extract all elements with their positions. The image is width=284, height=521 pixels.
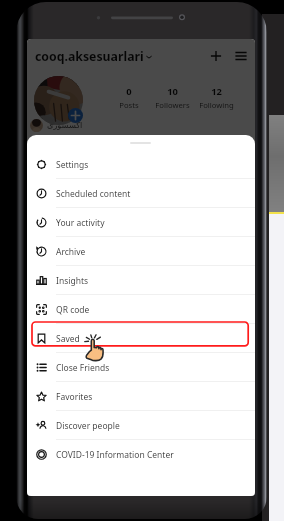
staticText: Following [199,100,234,110]
staticText: 0 [126,85,132,98]
button[interactable]: Your activity [27,208,255,237]
button[interactable] [30,119,43,132]
button[interactable]: COVID-19 Information Center [27,440,255,469]
button[interactable]: 0 [99,85,159,110]
staticText: Posts [119,100,139,110]
staticText: 12 [211,85,222,98]
staticText: Saved [56,333,80,345]
staticText: Your activity [56,217,105,229]
button[interactable]: Archive [27,237,255,266]
button[interactable]: 12 [186,85,246,110]
button[interactable]: Settings [27,150,255,179]
button[interactable]: cooq.aksesuarlari [35,46,152,66]
button[interactable]: 10 [142,85,202,110]
staticText: Insights [56,275,89,287]
staticText: Close Friends [56,362,110,374]
staticText: Followers [155,100,190,110]
button[interactable]: Favorites [27,382,255,411]
button[interactable]: Scheduled content [27,179,255,208]
button[interactable]: Menu [233,48,249,64]
staticText: Settings [56,159,89,171]
button[interactable]: New post [208,48,224,64]
button[interactable] [34,76,83,125]
button[interactable]: QR code [27,295,255,324]
button[interactable]: Discover people [27,411,255,440]
staticText: Scheduled content [56,188,131,200]
staticText: COVID-19 Information Center [56,449,174,461]
staticText: Favorites [56,391,93,403]
staticText: cooq.aksesuarlari [35,48,144,65]
button[interactable]: Saved [27,324,255,353]
staticText: اکسسوری [47,120,83,130]
staticText: QR code [56,304,90,316]
staticText: Discover people [56,420,120,432]
button[interactable]: Insights [27,266,255,295]
staticText: 10 [167,85,178,98]
button[interactable]: Add to story [68,108,83,123]
button[interactable]: Close Friends [27,353,255,382]
staticText: Archive [56,246,86,258]
